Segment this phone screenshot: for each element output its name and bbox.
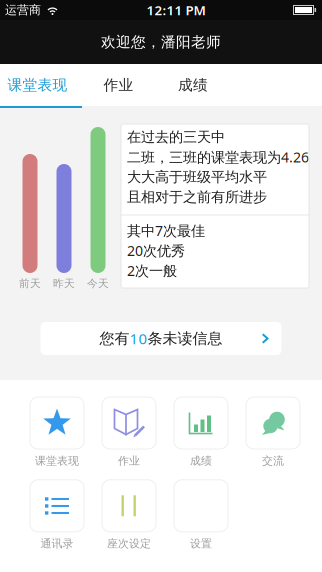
staticText: 且相对于之前有所进步 <box>127 188 267 206</box>
staticText: 课堂表现 <box>35 454 79 468</box>
button[interactable]: 设置 <box>165 480 237 551</box>
staticText: 其中7次最佳 <box>127 221 205 240</box>
button[interactable]: 课堂表现 <box>21 397 93 468</box>
button[interactable]: 作业 <box>75 64 162 106</box>
button[interactable]: 成绩 <box>162 64 224 106</box>
staticText: 座次设定 <box>107 537 151 551</box>
staticText: 20次优秀 <box>127 241 185 260</box>
staticText: 课堂表现 <box>7 76 67 94</box>
staticText: 12:11 PM <box>146 1 205 19</box>
button[interactable]: 座次设定 <box>93 480 165 551</box>
staticText: 通讯录 <box>40 537 73 551</box>
staticText: 运营商 <box>5 3 41 17</box>
staticText: 10 <box>129 328 147 349</box>
staticText: 二班，三班的课堂表现为4.26 <box>127 147 309 167</box>
staticText: 作业 <box>118 454 140 468</box>
staticText: 设置 <box>190 537 212 551</box>
staticText: 前天 <box>19 277 41 290</box>
button[interactable]: 成绩 <box>165 397 237 468</box>
staticText: 2次一般 <box>127 261 177 280</box>
staticText: 大大高于班级平均水平 <box>127 168 267 186</box>
staticText: 作业 <box>103 76 133 94</box>
button[interactable]: 作业 <box>93 397 165 468</box>
button[interactable]: 通讯录 <box>21 480 93 551</box>
button[interactable]: 交流 <box>237 397 309 468</box>
staticText: 条未读信息 <box>147 329 222 348</box>
staticText: 昨天 <box>53 277 75 290</box>
staticText: 您有 <box>99 329 129 348</box>
staticText: 欢迎您，潘阳老师 <box>101 33 221 51</box>
staticText: 成绩 <box>178 76 208 94</box>
button[interactable]: 您有 <box>40 322 281 355</box>
staticText: 交流 <box>262 454 284 468</box>
staticText: 在过去的三天中 <box>127 128 225 146</box>
staticText: 今天 <box>87 277 109 290</box>
button[interactable]: 课堂表现 <box>0 64 75 106</box>
staticText: 成绩 <box>190 454 212 468</box>
